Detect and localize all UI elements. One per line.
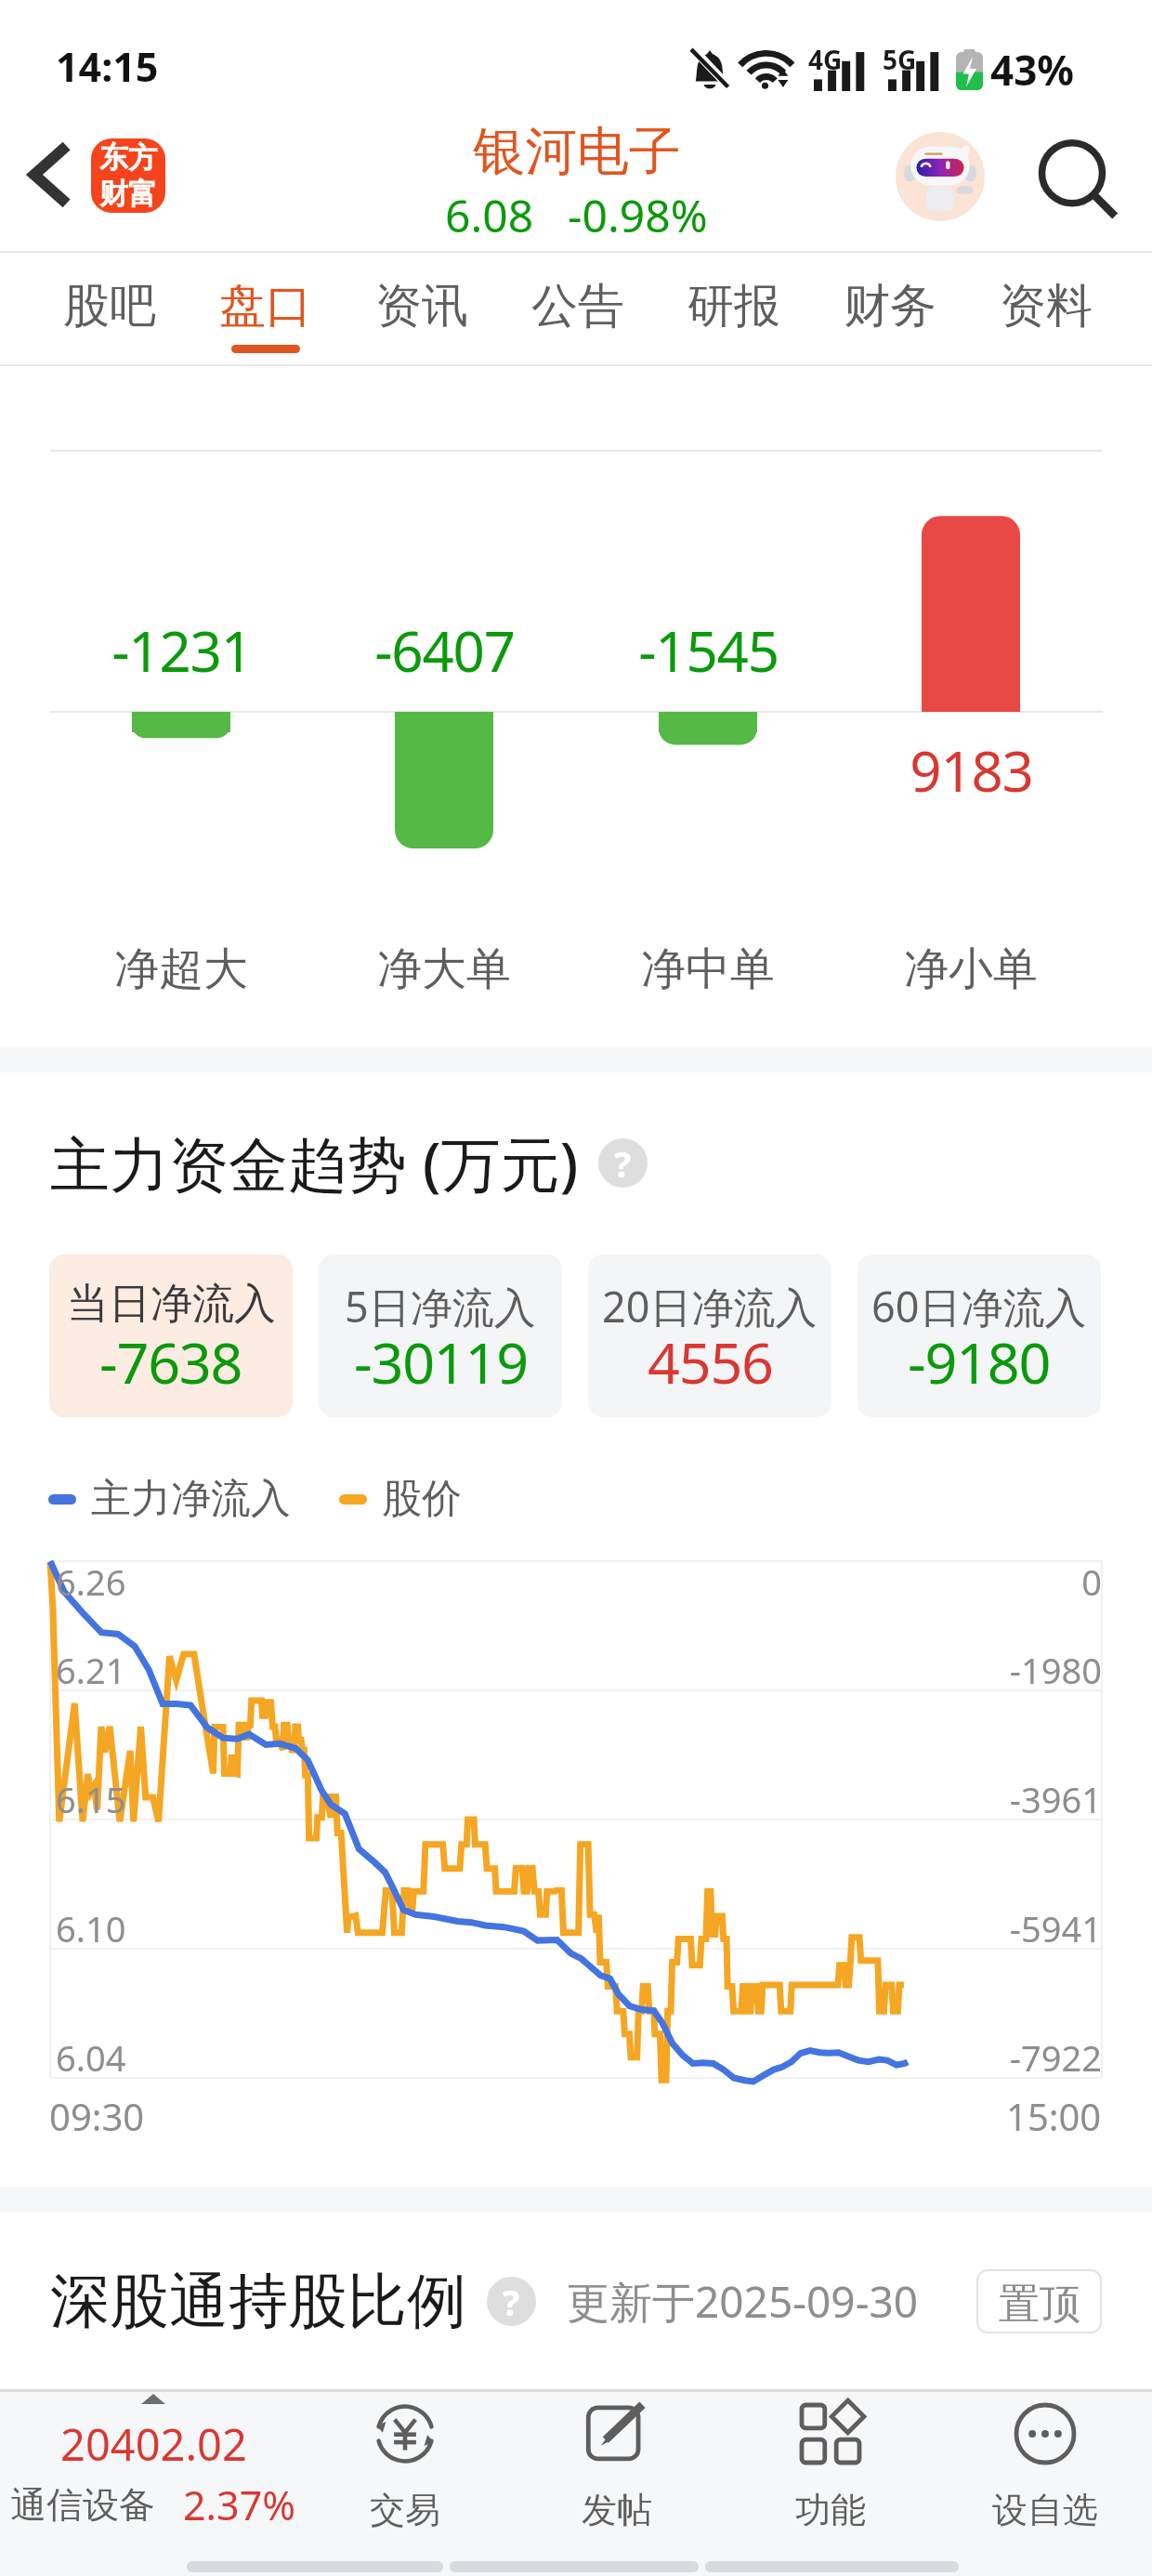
staticText: 资讯: [375, 277, 468, 335]
staticText: 发帖: [582, 2488, 652, 2532]
button[interactable]: 60日净流入: [857, 1255, 1101, 1417]
staticText: -1231: [111, 612, 252, 689]
staticText: -30119: [354, 1323, 528, 1400]
button[interactable]: 资讯: [344, 253, 500, 366]
staticText: -6407: [374, 612, 515, 689]
staticText: 深股通持股比例: [50, 2264, 466, 2339]
button[interactable]: 盘口: [188, 253, 344, 366]
staticText: 15:00: [1006, 2091, 1102, 2141]
staticText: 研报: [687, 277, 780, 335]
button[interactable]: 交易: [303, 2400, 507, 2560]
staticText: -3961: [1009, 1775, 1102, 1823]
staticText: 6.08: [445, 185, 534, 245]
button[interactable]: 财务: [812, 253, 968, 366]
staticText: 净小单: [904, 941, 1038, 997]
button[interactable]: 发帖: [515, 2400, 719, 2560]
staticText: 净中单: [641, 941, 775, 997]
staticText: 主力净流入: [91, 1474, 291, 1524]
staticText: ?: [614, 1139, 632, 1188]
staticText: 6.26: [56, 1557, 126, 1606]
staticText: -0.98%: [568, 185, 708, 245]
staticText: 净超大: [114, 941, 248, 997]
staticText: 6.21: [56, 1646, 126, 1694]
staticText: 净大单: [377, 941, 511, 997]
button[interactable]: 当日净流入: [49, 1255, 293, 1417]
staticText: 09:30: [49, 2091, 145, 2141]
staticText: 东方: [99, 139, 157, 176]
staticText: 功能: [795, 2488, 866, 2532]
staticText: 4556: [648, 1323, 773, 1400]
button[interactable]: 设自选: [943, 2400, 1147, 2560]
staticText: 20日净流入: [602, 1278, 818, 1334]
staticText: -1980: [1009, 1646, 1102, 1694]
staticText: -1545: [638, 612, 779, 689]
button[interactable]: 5日净流入: [319, 1255, 562, 1417]
staticText: -9180: [908, 1323, 1051, 1400]
staticText: ?: [503, 2278, 520, 2326]
staticText: -7922: [1009, 2033, 1102, 2082]
staticText: 6.10: [56, 1904, 126, 1952]
staticText: 银河电子: [473, 119, 681, 185]
staticText: 股吧: [63, 277, 156, 335]
button[interactable]: Search: [1036, 138, 1125, 228]
staticText: 通信设备: [10, 2482, 155, 2528]
staticText: 9183: [910, 732, 1033, 808]
staticText: 公告: [531, 277, 624, 335]
staticText: 2.37%: [183, 2477, 296, 2532]
staticText: 盘口: [219, 277, 312, 335]
staticText: 4G: [808, 42, 843, 77]
button[interactable]: 20日净流入: [588, 1255, 831, 1417]
staticText: 资料: [1000, 277, 1093, 335]
button[interactable]: 置顶: [976, 2269, 1102, 2333]
staticText: 主力资金趋势 (万元): [50, 1123, 579, 1203]
staticText: -5941: [1009, 1904, 1102, 1952]
staticText: 5日净流入: [345, 1278, 536, 1334]
button[interactable]: Help: [598, 1138, 648, 1188]
button[interactable]: 公告: [500, 253, 656, 366]
button[interactable]: Help: [487, 2277, 536, 2326]
staticText: 5G: [883, 42, 917, 77]
staticText: 设自选: [992, 2488, 1098, 2532]
staticText: 当日净流入: [67, 1278, 276, 1331]
staticText: 60日净流入: [871, 1278, 1087, 1334]
staticText: 交易: [370, 2488, 440, 2532]
button[interactable]: Back: [13, 139, 84, 210]
staticText: 财富: [99, 176, 157, 212]
button[interactable]: 股吧: [32, 253, 188, 366]
button[interactable]: 功能: [728, 2400, 933, 2560]
staticText: 14:15: [56, 39, 159, 94]
staticText: 6.15: [56, 1775, 126, 1823]
button[interactable]: 研报: [656, 253, 812, 366]
button[interactable]: 资料: [968, 253, 1124, 366]
staticText: 置顶: [999, 2279, 1080, 2330]
staticText: 股价: [382, 1474, 462, 1524]
staticText: 财务: [844, 277, 936, 335]
staticText: 43%: [990, 42, 1075, 98]
button[interactable]: East Money logo: [91, 138, 165, 213]
staticText: 0: [1081, 1557, 1102, 1606]
staticText: -7638: [99, 1323, 242, 1400]
button[interactable]: AI assistant: [896, 132, 985, 221]
staticText: 6.04: [56, 2033, 126, 2082]
staticText: 20402.02: [60, 2414, 247, 2474]
staticText: 更新于2025-09-30: [567, 2272, 919, 2331]
